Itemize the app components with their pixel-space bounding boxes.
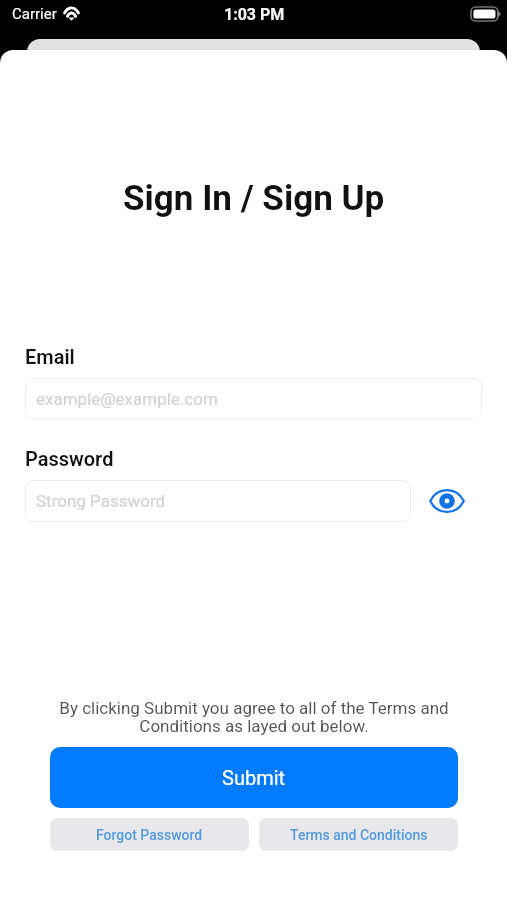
staticText: 1:03 PM: [224, 5, 285, 24]
button[interactable]: Submit: [50, 747, 458, 808]
staticText: example@example.com: [36, 389, 218, 409]
button[interactable]: Strong Password: [25, 480, 411, 522]
button[interactable]: Terms and Conditions: [259, 818, 458, 851]
button[interactable]: Show password: [411, 480, 482, 522]
staticText: Submit: [222, 766, 286, 789]
staticText: Password: [25, 447, 114, 470]
staticText: Sign In / Sign Up: [123, 178, 385, 219]
staticText: Forgot Password: [96, 827, 203, 843]
button[interactable]: Forgot Password: [50, 818, 249, 851]
staticText: Strong Password: [36, 491, 166, 511]
staticText: Carrier: [12, 5, 57, 23]
staticText: By clicking Submit you agree to all of t…: [56, 698, 452, 736]
button[interactable]: example@example.com: [25, 378, 482, 420]
staticText: Email: [25, 345, 75, 368]
staticText: Terms and Conditions: [290, 827, 428, 843]
